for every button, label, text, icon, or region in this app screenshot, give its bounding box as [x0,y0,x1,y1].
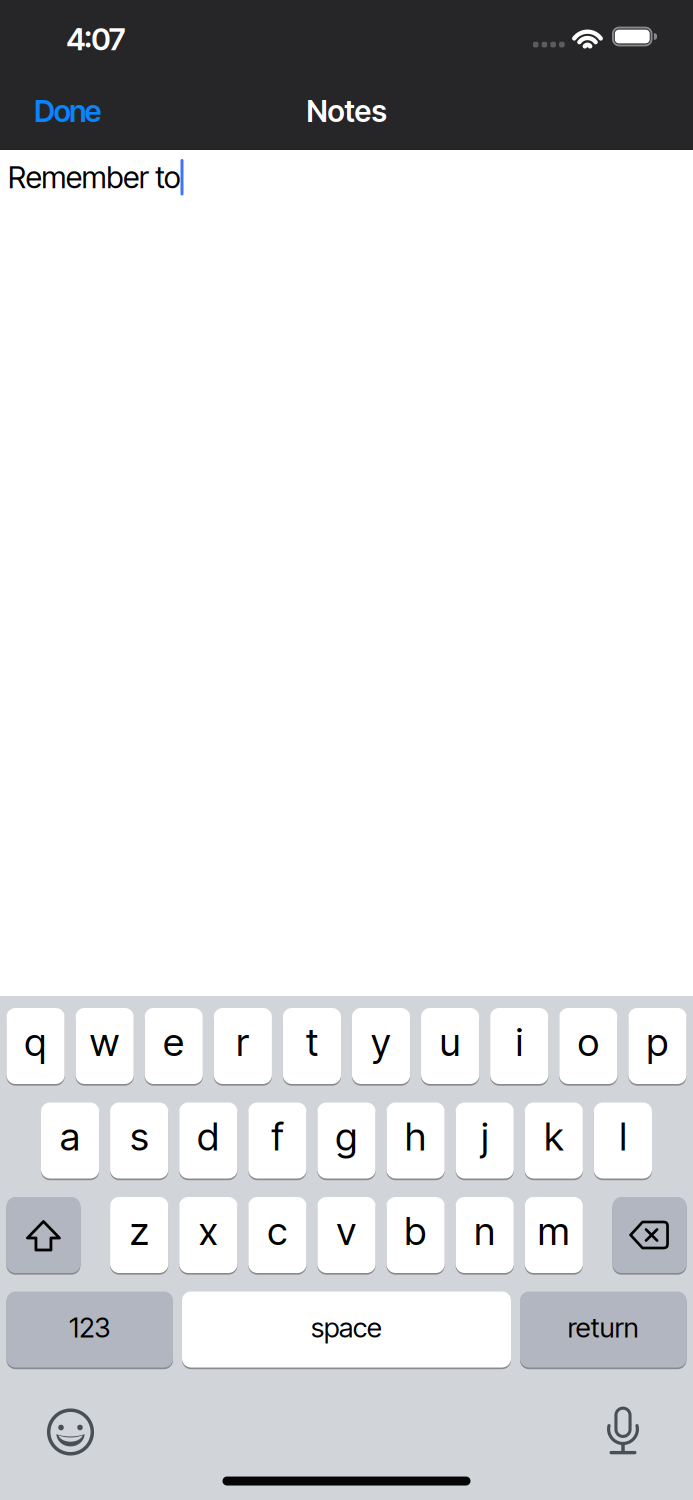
staticText: p [646,1019,668,1065]
button[interactable]: Shift [6,1197,80,1273]
staticText: 123 [69,1311,110,1344]
button[interactable]: g [317,1102,376,1178]
button[interactable]: w [76,1008,134,1084]
staticText: a [60,1113,80,1160]
staticText: k [544,1113,563,1160]
staticText: e [163,1019,184,1065]
button[interactable]: Delete [613,1197,687,1273]
staticText: n [474,1208,495,1254]
button[interactable]: i [490,1008,548,1084]
button[interactable]: z [110,1197,168,1273]
staticText: space [311,1311,382,1344]
staticText: z [130,1208,149,1254]
staticText: t [306,1019,318,1065]
staticText: b [405,1208,427,1254]
button[interactable]: t [283,1008,341,1084]
staticText: 4:07 [66,20,126,58]
staticText: s [130,1113,148,1160]
staticText: Done [34,93,102,129]
staticText: y [371,1019,391,1065]
button[interactable]: space [182,1291,511,1367]
button[interactable]: Emoji [45,1407,95,1457]
button[interactable]: q [6,1008,65,1084]
button[interactable]: d [179,1102,237,1178]
button[interactable]: n [456,1197,514,1273]
button[interactable]: p [628,1008,687,1084]
staticText: Notes [306,93,386,129]
staticText: v [336,1208,356,1254]
button[interactable]: v [317,1197,376,1273]
staticText: Remember to [8,159,180,195]
button[interactable]: c [248,1197,306,1273]
staticText: q [25,1019,47,1065]
staticText: c [267,1208,287,1254]
staticText: i [516,1019,523,1065]
button[interactable]: x [179,1197,237,1273]
staticText: r [236,1019,249,1065]
staticText: x [199,1208,218,1254]
button[interactable]: b [386,1197,445,1273]
button[interactable]: j [456,1102,514,1178]
button[interactable]: u [421,1008,479,1084]
button[interactable]: h [386,1102,445,1178]
staticText: m [538,1208,570,1254]
staticText: h [405,1113,426,1160]
button[interactable]: Dictation [598,1405,648,1455]
staticText: l [619,1113,626,1160]
staticText: w [90,1019,120,1065]
button[interactable]: m [525,1197,583,1273]
button[interactable]: s [110,1102,168,1178]
button[interactable]: k [525,1102,583,1178]
staticText: j [481,1113,488,1160]
staticText: g [335,1113,357,1160]
staticText: d [197,1113,219,1160]
staticText: o [578,1019,599,1065]
button[interactable]: 123 [6,1291,173,1367]
button[interactable]: f [248,1102,306,1178]
button[interactable]: Done [34,93,102,129]
staticText: u [440,1019,461,1065]
button[interactable]: e [145,1008,203,1084]
button[interactable]: r [214,1008,272,1084]
staticText: return [568,1311,639,1344]
button[interactable]: l [594,1102,652,1178]
button[interactable]: return [520,1291,686,1367]
button[interactable]: y [352,1008,410,1084]
button[interactable]: o [559,1008,617,1084]
staticText: f [271,1113,283,1160]
button[interactable]: a [41,1102,99,1178]
